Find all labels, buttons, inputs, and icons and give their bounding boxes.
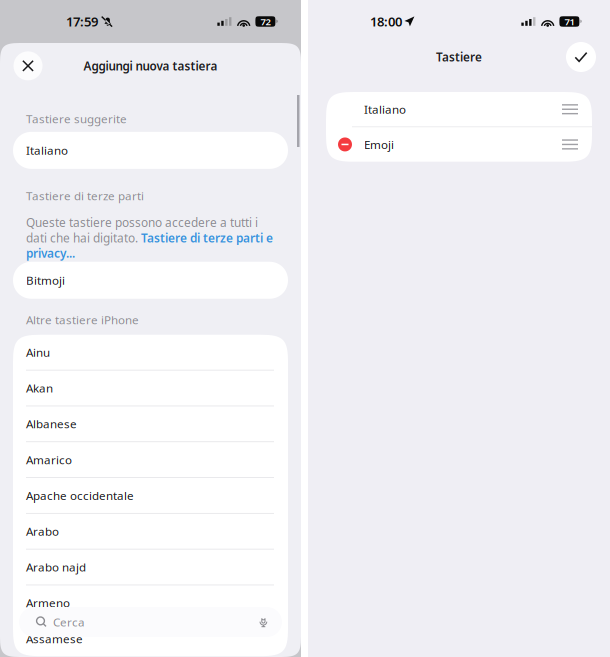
staticText: Altre tastiere iPhone bbox=[26, 312, 139, 328]
button[interactable]: Amarico bbox=[13, 442, 288, 477]
staticText: Assamese bbox=[26, 631, 83, 646]
button[interactable]: Emoji bbox=[326, 127, 592, 162]
staticText: privacy... bbox=[26, 245, 75, 261]
button[interactable]: Italiano bbox=[13, 132, 288, 169]
staticText: Aggiungi nuova tastiera bbox=[83, 58, 217, 74]
staticText: Cerca bbox=[53, 614, 85, 630]
button[interactable]: Arabo bbox=[13, 514, 288, 549]
button[interactable]: Arabo najd bbox=[13, 549, 288, 584]
staticText: 71 bbox=[564, 15, 574, 28]
staticText: Italiano bbox=[364, 101, 406, 117]
button[interactable]: Apache occidentale bbox=[13, 478, 288, 513]
staticText: Ainu bbox=[26, 344, 50, 360]
button[interactable]: Cerca bbox=[19, 607, 282, 637]
button[interactable]: Tastiere di terze parti e bbox=[141, 230, 273, 246]
staticText: Akan bbox=[26, 380, 53, 396]
staticText: Queste tastiere possono accedere a tutti… bbox=[26, 214, 258, 231]
button[interactable]: Assamese bbox=[13, 621, 288, 656]
staticText: Albanese bbox=[26, 416, 77, 432]
button[interactable]: Armeno bbox=[13, 585, 288, 620]
button[interactable]: Fine bbox=[558, 43, 604, 71]
staticText: 72 bbox=[260, 15, 270, 28]
staticText: Armeno bbox=[26, 595, 70, 611]
button[interactable]: Albanese bbox=[13, 406, 288, 441]
staticText: Tastiere suggerite bbox=[26, 111, 127, 127]
button[interactable]: Bitmoji bbox=[13, 262, 288, 299]
staticText: Arabo najd bbox=[26, 559, 86, 575]
button[interactable]: Akan bbox=[13, 371, 288, 406]
staticText: Arabo bbox=[26, 523, 59, 539]
staticText: Italiano bbox=[26, 142, 68, 158]
staticText: dati che hai digitato. bbox=[26, 230, 141, 246]
button[interactable]: privacy... bbox=[26, 245, 75, 261]
button[interactable]: Italiano bbox=[326, 92, 592, 126]
staticText: Tastiere di terze parti e bbox=[141, 230, 273, 246]
staticText: Tastiere bbox=[436, 49, 482, 65]
staticText: Apache occidentale bbox=[26, 487, 134, 503]
staticText: 17:59 bbox=[66, 13, 98, 30]
staticText: 18:00 bbox=[370, 13, 402, 30]
button[interactable]: Ainu bbox=[13, 335, 288, 370]
staticText: Amarico bbox=[26, 452, 72, 467]
staticText: Tastiere di terze parti bbox=[26, 188, 144, 204]
staticText: Bitmoji bbox=[26, 272, 65, 288]
button[interactable]: Chiudi bbox=[6, 36, 50, 96]
staticText: Emoji bbox=[364, 136, 394, 152]
